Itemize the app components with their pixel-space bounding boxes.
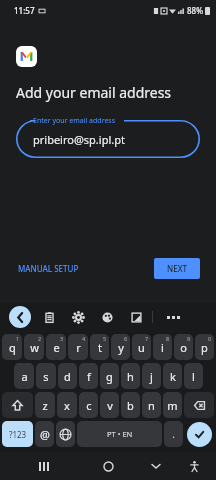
button[interactable]: y: [111, 334, 130, 360]
staticText: y: [118, 340, 124, 355]
staticText: u: [138, 340, 145, 355]
button[interactable]: c: [79, 392, 98, 418]
staticText: 11:57: [14, 5, 35, 16]
button[interactable]: w: [24, 334, 44, 360]
staticText: t: [98, 340, 102, 355]
staticText: PT • EN: [107, 429, 133, 439]
staticText: 4: [82, 335, 86, 342]
button[interactable]: ?123: [2, 421, 33, 447]
button[interactable]: z: [35, 392, 55, 418]
button[interactable]: t: [90, 334, 109, 360]
button[interactable]: Recents: [32, 454, 56, 478]
button[interactable]: Shift: [2, 392, 33, 418]
button[interactable]: x: [57, 392, 77, 418]
staticText: k: [170, 369, 176, 384]
button[interactable]: Theme: [96, 306, 118, 328]
staticText: Add your email address: [16, 83, 172, 102]
button[interactable]: Accessibility: [182, 454, 206, 478]
staticText: v: [107, 398, 113, 413]
staticText: Enter your email address: [33, 116, 116, 126]
staticText: MANUAL SETUP: [18, 263, 79, 274]
staticText: i: [161, 340, 164, 355]
staticText: 0: [208, 335, 212, 342]
staticText: 3: [60, 335, 64, 342]
button[interactable]: h: [121, 363, 140, 389]
staticText: 2: [38, 335, 42, 342]
button[interactable]: m: [163, 392, 182, 418]
button[interactable]: i: [153, 334, 172, 360]
button[interactable]: @: [35, 421, 54, 447]
button[interactable]: Home: [96, 454, 120, 478]
button[interactable]: Resize keyboard: [125, 306, 147, 328]
button[interactable]: b: [121, 392, 140, 418]
button[interactable]: p: [195, 334, 214, 360]
button[interactable]: f: [79, 363, 98, 389]
button[interactable]: l: [184, 363, 203, 389]
button[interactable]: s: [36, 363, 56, 389]
staticText: a: [21, 369, 28, 384]
staticText: e: [53, 340, 60, 355]
button[interactable]: q: [2, 334, 22, 360]
button[interactable]: v: [100, 392, 119, 418]
staticText: @: [40, 427, 50, 442]
button[interactable]: j: [142, 363, 161, 389]
button[interactable]: PT • EN: [77, 421, 162, 447]
staticText: d: [64, 369, 71, 384]
button[interactable]: More options: [162, 306, 184, 328]
staticText: n: [148, 398, 155, 413]
button[interactable]: n: [142, 392, 161, 418]
staticText: p: [201, 340, 208, 355]
staticText: j: [150, 369, 153, 384]
button[interactable]: u: [132, 334, 151, 360]
button[interactable]: k: [163, 363, 182, 389]
staticText: 5: [103, 335, 107, 342]
button[interactable]: .: [164, 421, 183, 447]
button[interactable]: Change language: [56, 421, 75, 447]
staticText: 7: [145, 335, 149, 342]
button[interactable]: o: [174, 334, 193, 360]
button[interactable]: g: [100, 363, 119, 389]
button[interactable]: MANUAL SETUP: [16, 259, 81, 278]
button[interactable]: Settings: [67, 306, 89, 328]
staticText: o: [180, 340, 187, 355]
staticText: f: [87, 369, 91, 384]
button[interactable]: d: [58, 363, 77, 389]
button[interactable]: a: [14, 363, 34, 389]
button[interactable]: Backspace: [184, 392, 214, 418]
staticText: ?123: [9, 429, 27, 440]
staticText: l: [192, 369, 195, 384]
staticText: 6: [124, 335, 128, 342]
staticText: m: [167, 398, 178, 413]
staticText: pribeiro@sp.ipl.pt: [33, 132, 125, 147]
staticText: g: [106, 369, 113, 384]
staticText: c: [86, 398, 92, 413]
button[interactable]: Clipboard: [38, 306, 60, 328]
staticText: 8: [166, 335, 170, 342]
button[interactable]: r: [68, 334, 88, 360]
staticText: h: [127, 369, 134, 384]
staticText: b: [127, 398, 134, 413]
staticText: 9: [187, 335, 191, 342]
staticText: x: [64, 398, 70, 413]
staticText: w: [30, 340, 39, 355]
button[interactable]: Enter your email address: [16, 120, 200, 158]
staticText: z: [42, 398, 48, 413]
button[interactable]: e: [46, 334, 66, 360]
staticText: q: [9, 340, 16, 355]
staticText: s: [43, 369, 49, 384]
staticText: NEXT: [167, 263, 188, 274]
staticText: 1: [16, 335, 20, 342]
button[interactable]: Back: [9, 306, 31, 328]
staticText: .: [172, 429, 175, 440]
button[interactable]: Enter: [187, 422, 212, 447]
staticText: 88%: [187, 5, 203, 16]
button[interactable]: Hide keyboard: [144, 454, 168, 478]
button[interactable]: NEXT: [154, 258, 200, 279]
staticText: r: [76, 340, 81, 355]
